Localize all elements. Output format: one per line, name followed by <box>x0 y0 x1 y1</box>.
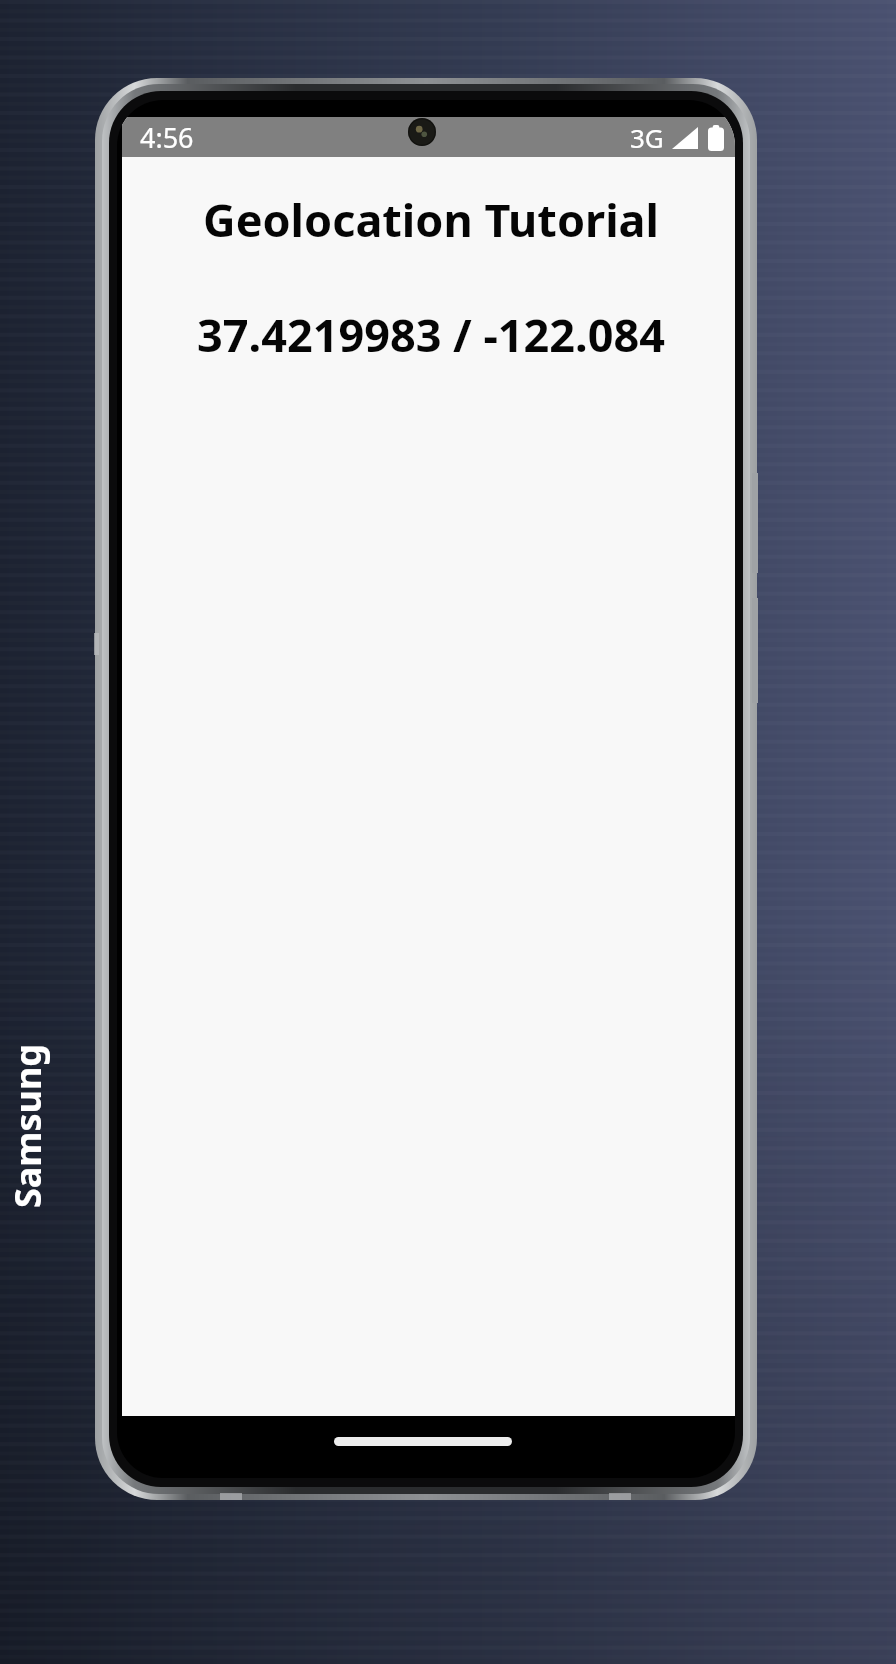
staticText: Samsung Galaxy S21 <box>3 1001 63 1251</box>
button[interactable]: Home gesture <box>334 1437 512 1446</box>
button[interactable]: 37.4219983 / -122.084 <box>122 304 735 365</box>
staticText: 4:56 <box>140 119 194 156</box>
button[interactable]: Geolocation Tutorial <box>122 189 735 250</box>
staticText: 3G <box>630 120 664 155</box>
